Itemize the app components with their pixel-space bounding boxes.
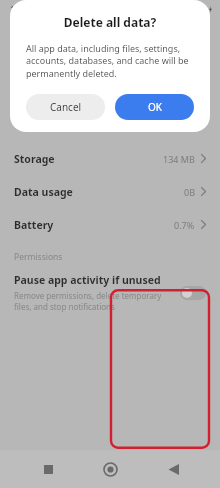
button[interactable]: Pause app activity if unused (0, 269, 220, 316)
button[interactable]: Data usage (0, 175, 220, 208)
staticText: Cancel (50, 100, 82, 114)
button[interactable]: Home (95, 454, 125, 484)
staticText: App info (14, 57, 82, 80)
button[interactable]: More options (186, 21, 214, 49)
button[interactable]: OK (115, 94, 194, 120)
staticText: Security (60, 95, 105, 110)
staticText: OK (148, 100, 162, 114)
staticText: Permissions (14, 251, 63, 263)
staticText: 0.7% (174, 219, 195, 231)
staticText: All app data, including files, settings,… (26, 42, 194, 80)
staticText: Remove permissions, delete temporary fil… (14, 290, 170, 312)
button[interactable]: Pause app activity toggle (180, 286, 206, 300)
button[interactable]: Storage (0, 142, 220, 175)
staticText: 0B (184, 186, 195, 198)
staticText: Data usage (14, 185, 73, 199)
staticText: Battery (14, 218, 54, 232)
staticText: 10:08 AM (10, 4, 45, 15)
button[interactable]: Battery (0, 208, 220, 241)
button[interactable]: Security (0, 84, 220, 134)
staticText: Storage (14, 152, 55, 166)
button[interactable]: Back (6, 20, 36, 50)
staticText: 134 MB (163, 153, 195, 165)
staticText: Version: 8.7.8-240416.1.1 (60, 112, 154, 123)
button[interactable]: Back (158, 454, 188, 484)
staticText: Pause app activity if unused (14, 273, 161, 287)
button[interactable]: Recent apps (33, 454, 63, 484)
staticText: Delete all data? (26, 14, 194, 30)
button[interactable]: Cancel (26, 94, 105, 120)
